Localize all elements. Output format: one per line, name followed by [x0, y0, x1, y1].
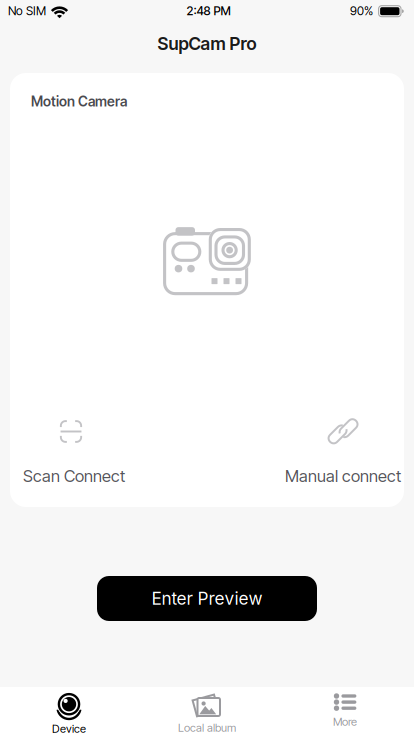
button[interactable]: Local album [138, 687, 276, 736]
staticText: Manual connect [285, 466, 401, 486]
button[interactable]: Enter Preview [97, 576, 317, 621]
button[interactable]: More [276, 687, 414, 736]
staticText: SupCam Pro [157, 33, 256, 54]
staticText: Enter Preview [151, 588, 262, 609]
staticText: Device [52, 722, 86, 736]
button[interactable]: Scan Connect [23, 420, 125, 486]
staticText: More [333, 715, 357, 729]
staticText: Scan Connect [23, 466, 125, 486]
staticText: 90% [350, 4, 373, 18]
staticText: 2:48 PM [186, 4, 230, 18]
staticText: No SIM [8, 4, 46, 18]
button[interactable]: Manual connect [285, 416, 401, 486]
button[interactable]: Device [0, 687, 138, 736]
staticText: Local album [178, 721, 236, 735]
staticText: Motion Camera [31, 93, 127, 110]
